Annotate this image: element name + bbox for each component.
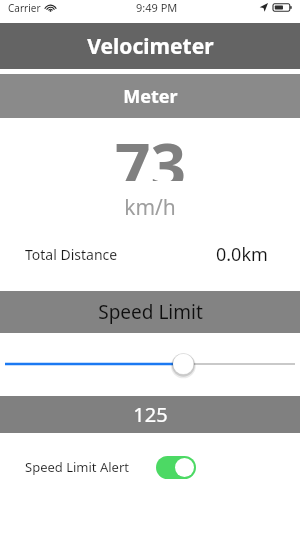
- staticText: 73: [115, 123, 186, 181]
- staticText: Speed Limit: [98, 299, 203, 325]
- button[interactable]: 125: [0, 396, 300, 433]
- button[interactable]: Speed Limit Alert toggle, on: [156, 456, 196, 479]
- staticText: Meter: [123, 84, 178, 109]
- staticText: Carrier: [8, 1, 41, 15]
- staticText: Total Distance: [25, 245, 118, 264]
- staticText: 125: [133, 401, 168, 428]
- button[interactable]: Speed limit slider: [0, 351, 300, 377]
- staticText: Speed Limit Alert: [25, 458, 129, 476]
- staticText: 0.0km: [216, 242, 268, 267]
- staticText: Velocimeter: [87, 32, 214, 61]
- button[interactable]: Meter: [0, 74, 300, 118]
- staticText: km/h: [124, 193, 176, 219]
- button[interactable]: Speed Limit: [0, 291, 300, 333]
- staticText: 9:49 PM: [136, 0, 178, 15]
- button[interactable]: Total Distance: [0, 239, 300, 269]
- button[interactable]: Velocimeter: [0, 23, 300, 69]
